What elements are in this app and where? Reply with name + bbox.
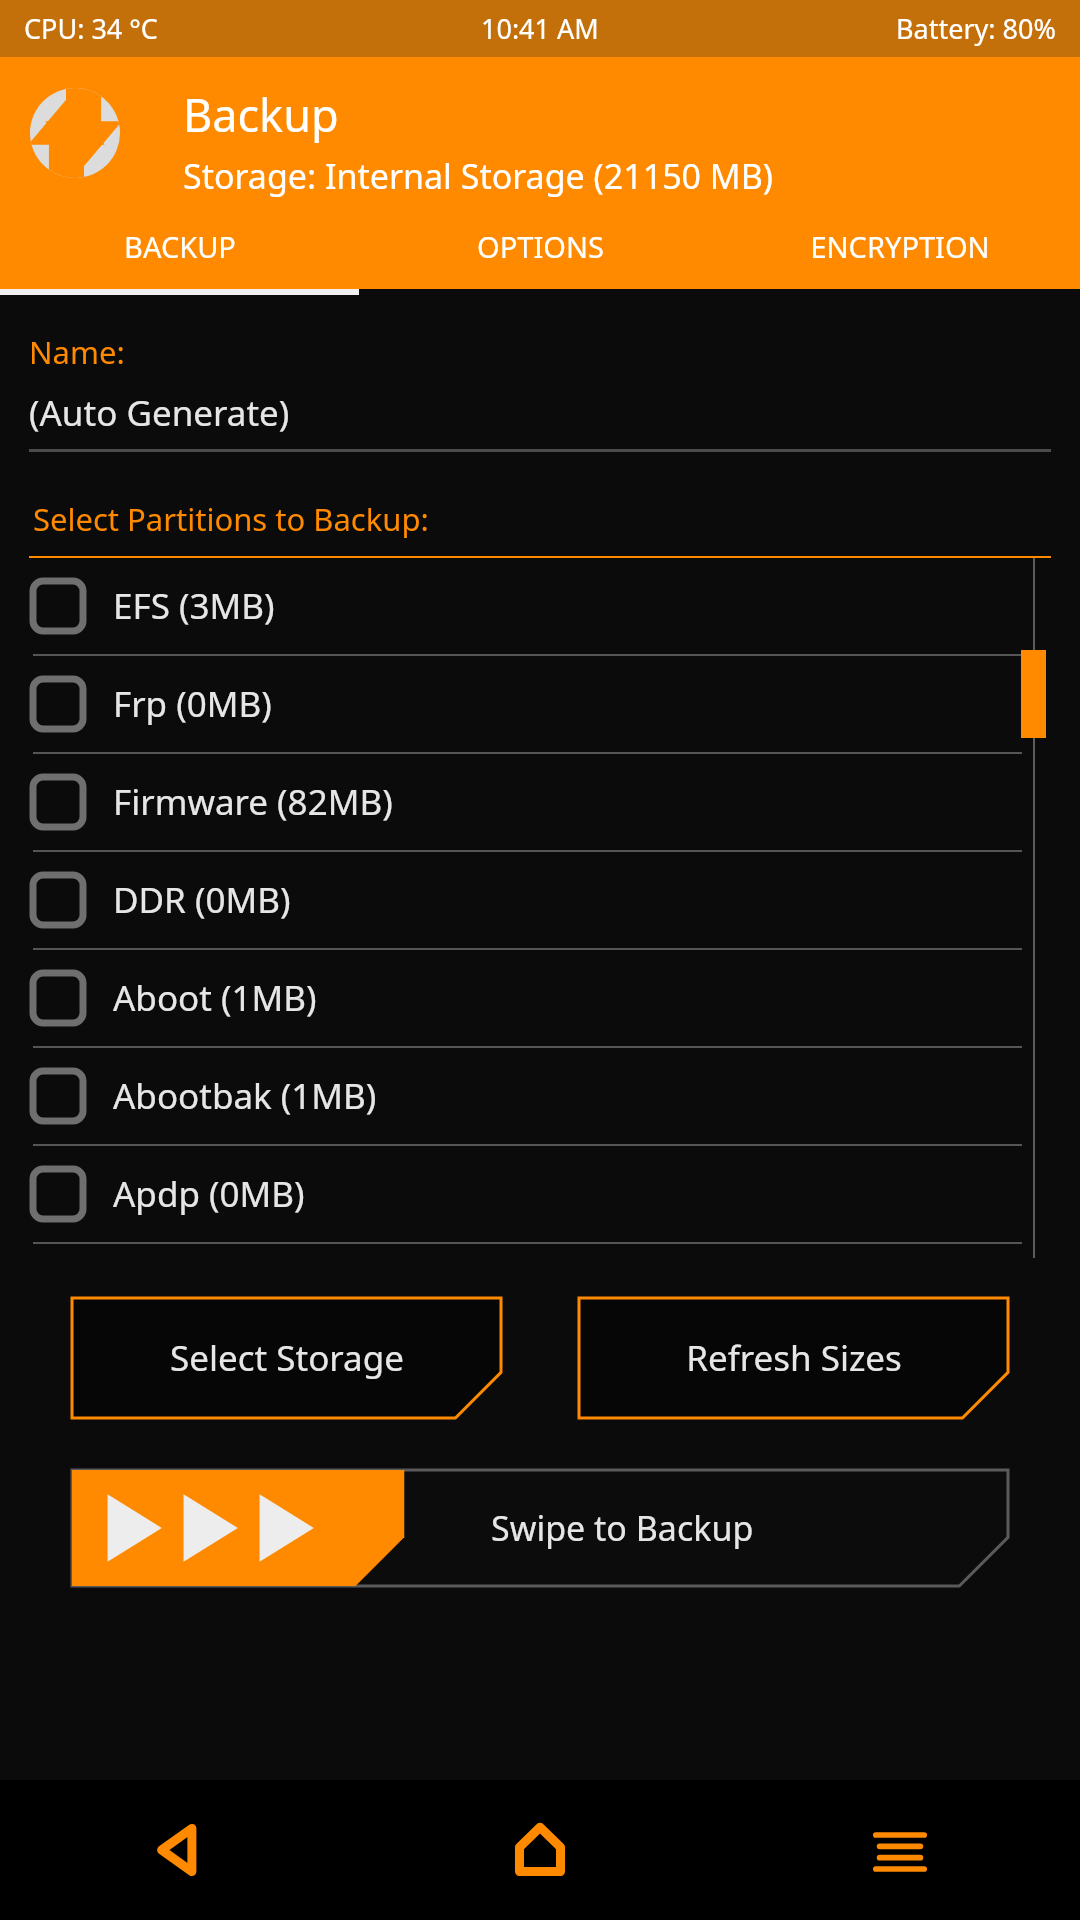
staticText: OPTIONS xyxy=(477,227,604,266)
button[interactable]: DDR (0MB) xyxy=(0,852,1080,950)
staticText: Firmware (82MB) xyxy=(113,778,393,826)
staticText: DDR (0MB) xyxy=(113,876,291,924)
staticText: ENCRYPTION xyxy=(810,227,990,266)
button[interactable]: Frp (0MB) xyxy=(0,656,1080,754)
staticText: BACKUP xyxy=(124,227,236,266)
button[interactable]: ENCRYPTION xyxy=(720,203,1080,289)
staticText: Refresh Sizes xyxy=(686,1334,902,1382)
button[interactable]: Abootbak (1MB) xyxy=(0,1048,1080,1146)
button[interactable]: Firmware (82MB) xyxy=(0,754,1080,852)
staticText: Storage: Internal Storage (21150 MB) xyxy=(183,153,774,199)
button[interactable]: Back xyxy=(0,1780,360,1920)
button[interactable]: OPTIONS xyxy=(360,203,720,289)
staticText: CPU: 34 °C xyxy=(24,10,158,47)
button[interactable]: Aboot (1MB) xyxy=(0,950,1080,1048)
button[interactable]: BACKUP xyxy=(0,203,360,289)
staticText: EFS (3MB) xyxy=(113,582,275,630)
button[interactable]: EFS (3MB) xyxy=(0,558,1080,656)
button[interactable]: Select Storage xyxy=(72,1298,501,1418)
staticText: Select Storage xyxy=(170,1334,404,1382)
staticText: Abootbak (1MB) xyxy=(113,1072,377,1120)
staticText: (Auto Generate) xyxy=(29,389,290,437)
button[interactable]: Apdp (0MB) xyxy=(0,1146,1080,1244)
button[interactable]: Refresh Sizes xyxy=(579,1298,1008,1418)
staticText: Backup xyxy=(183,84,339,145)
staticText: Swipe to Backup xyxy=(491,1505,754,1551)
staticText: Frp (0MB) xyxy=(113,680,272,728)
staticText: 10:41 AM xyxy=(481,10,599,47)
button[interactable]: Swipe to Backup xyxy=(72,1470,1008,1586)
staticText: Apdp (0MB) xyxy=(113,1170,305,1218)
button[interactable]: Menu xyxy=(720,1780,1080,1920)
staticText: Name: xyxy=(29,331,125,373)
button[interactable]: Home xyxy=(360,1780,720,1920)
staticText: Aboot (1MB) xyxy=(113,974,317,1022)
staticText: Select Partitions to Backup: xyxy=(33,498,429,540)
staticText: Battery: 80% xyxy=(896,10,1056,47)
